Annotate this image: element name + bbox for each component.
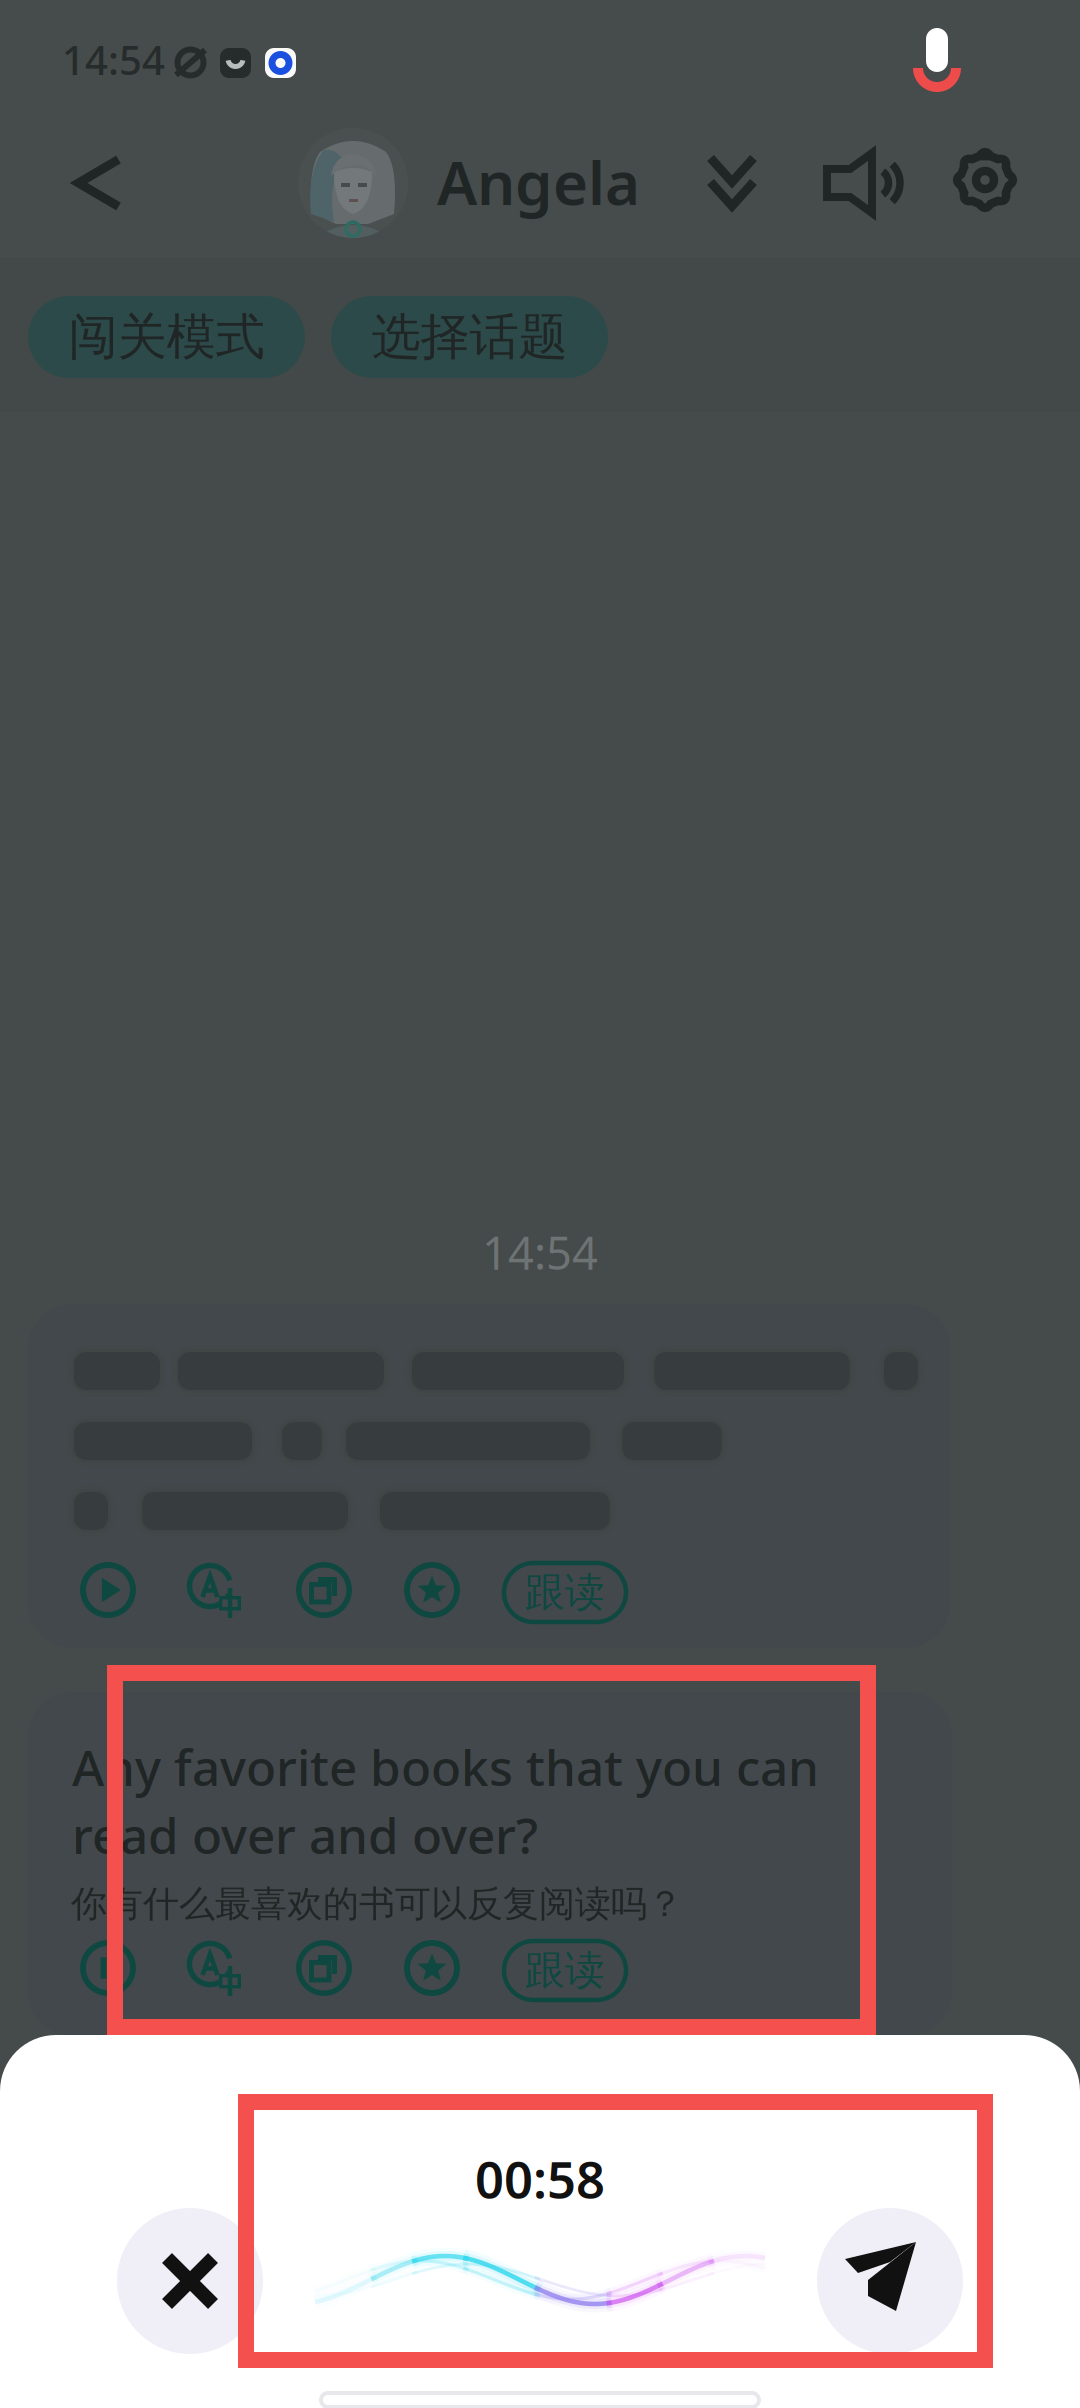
button[interactable]: Send recording: [817, 2208, 963, 2354]
staticText: 14:54: [482, 1222, 598, 1282]
staticText: 选择话题: [371, 307, 567, 367]
button[interactable]: Play: [80, 1940, 136, 1996]
button[interactable]: Sound: [815, 135, 925, 231]
button[interactable]: Copy: [296, 1562, 352, 1618]
staticText: 14:54: [62, 33, 165, 86]
button[interactable]: 选择话题: [331, 296, 608, 378]
button[interactable]: Translate: [188, 1940, 244, 1996]
button[interactable]: Back: [43, 128, 153, 238]
staticText: 闯关模式: [68, 307, 264, 367]
staticText: 你有什么最喜欢的书可以反复阅读吗？: [71, 1882, 683, 1926]
button[interactable]: 闯关模式: [28, 296, 305, 378]
button[interactable]: Favourite: [404, 1940, 460, 1996]
button[interactable]: Settings: [936, 135, 1040, 231]
button[interactable]: Play: [80, 1562, 136, 1618]
button[interactable]: Favourite: [404, 1562, 460, 1618]
staticText: 00:58: [475, 2145, 605, 2212]
button[interactable]: 跟读: [504, 1941, 626, 2000]
button[interactable]: Translate: [188, 1562, 244, 1618]
staticText: Angela: [437, 142, 640, 222]
button[interactable]: Scroll to bottom: [684, 135, 780, 231]
button[interactable]: Copy: [296, 1940, 352, 1996]
staticText: 跟读: [525, 1568, 605, 1617]
staticText: 跟读: [525, 1946, 605, 1995]
staticText: Any favorite books that you can: [72, 1734, 819, 1799]
staticText: read over and over?: [72, 1802, 538, 1867]
button[interactable]: Cancel recording: [117, 2208, 263, 2354]
button[interactable]: 跟读: [504, 1563, 626, 1622]
